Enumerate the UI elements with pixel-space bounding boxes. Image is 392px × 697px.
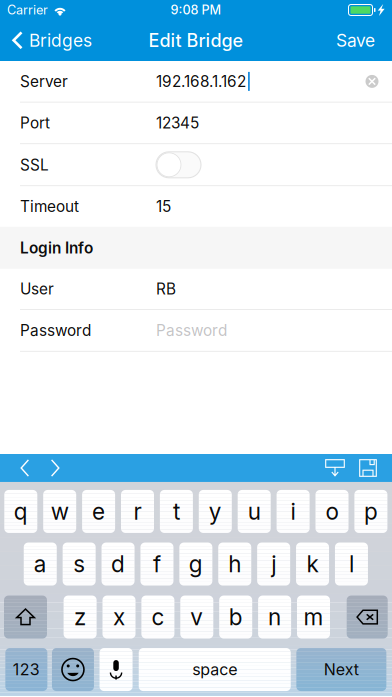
button[interactable]: e: [82, 490, 115, 533]
staticText: Password: [156, 321, 227, 340]
staticText: r: [133, 498, 141, 525]
button[interactable]: j: [257, 543, 290, 586]
button[interactable]: u: [238, 490, 271, 533]
button[interactable]: Shift: [4, 596, 47, 639]
button[interactable]: k: [296, 543, 329, 586]
staticText: b: [229, 603, 243, 631]
staticText: g: [189, 550, 203, 578]
button[interactable]: x: [102, 596, 135, 639]
button[interactable]: s: [63, 543, 96, 586]
staticText: m: [303, 603, 323, 631]
button[interactable]: o: [315, 490, 348, 533]
staticText: k: [307, 550, 319, 578]
button[interactable]: y: [199, 490, 232, 533]
staticText: n: [268, 603, 281, 631]
staticText: Server: [20, 72, 68, 91]
staticText: z: [74, 603, 86, 631]
button[interactable]: z: [64, 596, 97, 639]
button[interactable]: Delete: [347, 596, 388, 639]
staticText: 12345: [156, 114, 199, 132]
staticText: User: [20, 280, 54, 298]
button[interactable]: l: [335, 543, 368, 586]
staticText: Carrier: [7, 2, 48, 18]
button[interactable]: a: [24, 543, 57, 586]
staticText: 15: [156, 197, 171, 216]
staticText: h: [228, 550, 241, 578]
staticText: RB: [156, 280, 176, 298]
staticText: Timeout: [20, 197, 79, 216]
button[interactable]: Save: [319, 20, 392, 61]
staticText: Port: [20, 114, 50, 132]
staticText: space: [192, 660, 237, 679]
staticText: i: [291, 498, 296, 525]
staticText: Next: [324, 660, 359, 679]
button[interactable]: m: [297, 596, 330, 639]
button[interactable]: SSL: [156, 150, 201, 180]
button[interactable]: q: [4, 490, 37, 533]
staticText: a: [34, 550, 47, 578]
staticText: v: [190, 603, 203, 631]
button[interactable]: Hide keyboard: [318, 454, 352, 482]
staticText: u: [248, 498, 261, 525]
button[interactable]: Clear text: [357, 66, 387, 96]
staticText: w: [51, 498, 69, 525]
staticText: 123: [13, 660, 40, 679]
button[interactable]: b: [219, 596, 252, 639]
button[interactable]: i: [277, 490, 310, 533]
button[interactable]: Bridges: [0, 20, 102, 61]
button[interactable]: n: [258, 596, 291, 639]
staticText: t: [173, 498, 180, 525]
button[interactable]: g: [179, 543, 212, 586]
staticText: Login Info: [20, 238, 93, 257]
staticText: x: [113, 603, 125, 631]
staticText: q: [14, 498, 28, 525]
button[interactable]: space: [139, 648, 291, 691]
button[interactable]: r: [121, 490, 154, 533]
button[interactable]: Emoji: [52, 648, 94, 691]
staticText: SSL: [20, 155, 49, 174]
staticText: Edit Bridge: [148, 30, 243, 51]
button[interactable]: Next: [296, 648, 386, 691]
staticText: l: [349, 550, 354, 578]
staticText: c: [151, 603, 164, 631]
staticText: d: [111, 550, 125, 578]
staticText: Bridges: [29, 30, 92, 51]
button[interactable]: Save: [352, 454, 392, 482]
staticText: s: [73, 550, 85, 578]
staticText: f: [153, 550, 161, 578]
button[interactable]: Dictation: [99, 648, 132, 691]
button[interactable]: d: [101, 543, 134, 586]
button[interactable]: Next field: [40, 454, 70, 482]
button[interactable]: v: [180, 596, 213, 639]
button[interactable]: f: [140, 543, 173, 586]
button[interactable]: t: [160, 490, 193, 533]
staticText: j: [271, 550, 276, 578]
button[interactable]: p: [354, 490, 387, 533]
button[interactable]: c: [141, 596, 174, 639]
staticText: 192.168.1.162: [156, 72, 246, 91]
staticText: 9:08 PM: [170, 2, 221, 18]
staticText: Save: [336, 30, 375, 51]
button[interactable]: h: [218, 543, 251, 586]
staticText: y: [209, 498, 222, 525]
button[interactable]: 123: [5, 648, 47, 691]
button[interactable]: Previous field: [0, 454, 40, 482]
button[interactable]: w: [43, 490, 76, 533]
staticText: o: [325, 498, 338, 525]
staticText: p: [364, 498, 378, 525]
staticText: Password: [20, 321, 91, 340]
staticText: e: [92, 498, 105, 525]
